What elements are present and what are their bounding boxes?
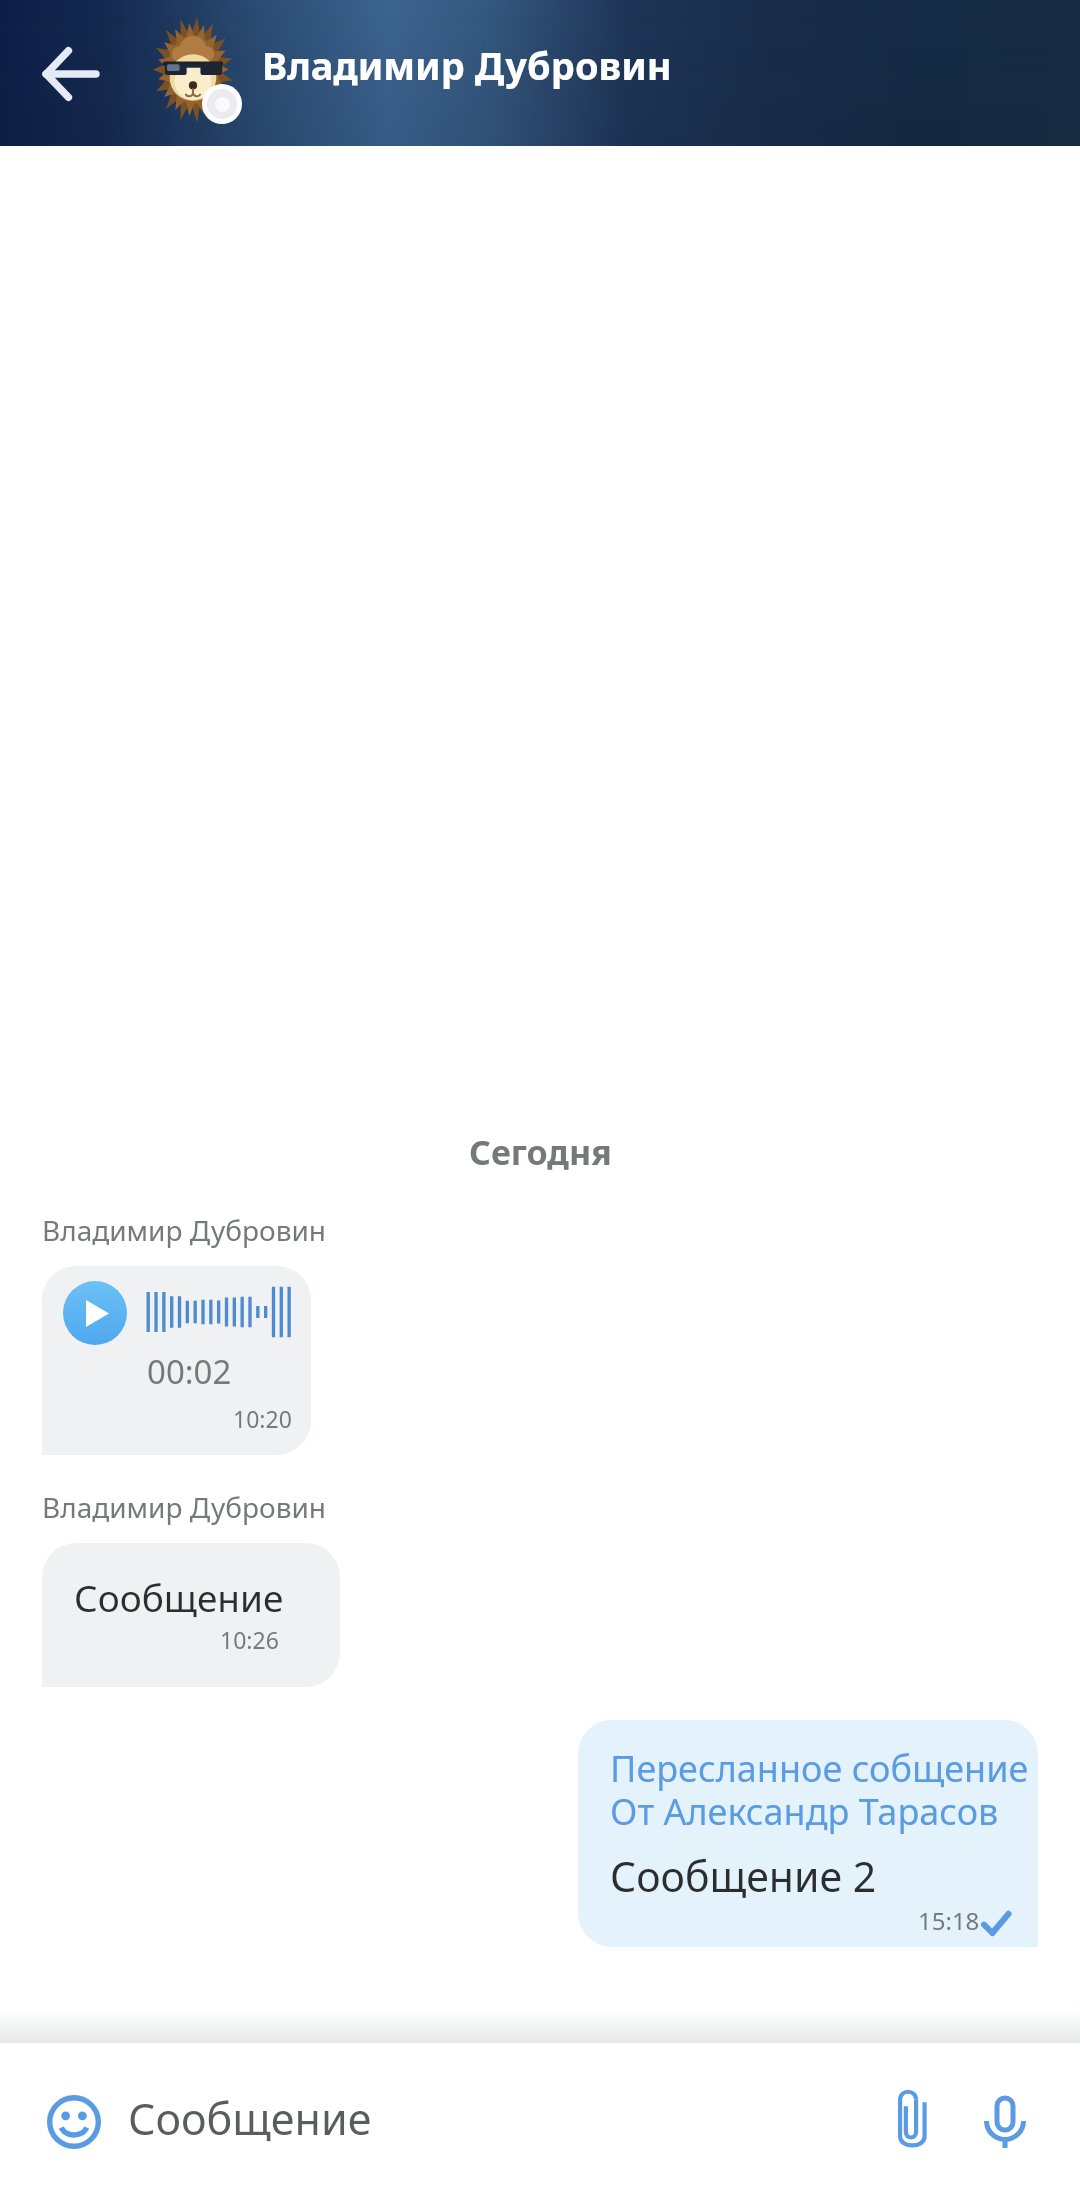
button[interactable]: Пересланное собщение: [578, 1720, 1038, 1947]
button[interactable]: Emoji: [38, 2086, 110, 2158]
staticText: Сообщение: [128, 2089, 372, 2148]
staticText: 15:18: [918, 1904, 980, 1937]
button[interactable]: Back: [36, 40, 104, 108]
staticText: Сегодня: [469, 1129, 612, 1175]
staticText: 10:20: [233, 1403, 292, 1434]
staticText: Пересланное собщение: [610, 1744, 1029, 1793]
staticText: Сообщение: [74, 1572, 284, 1622]
button[interactable]: Сообщение: [42, 1543, 340, 1687]
staticText: От Александр Тарасов: [610, 1787, 999, 1836]
button[interactable]: Владимир Дубровин: [142, 0, 652, 146]
button[interactable]: Attach file: [874, 2081, 950, 2157]
staticText: Сообщение 2: [610, 1848, 877, 1904]
staticText: Владимир Дубровин: [42, 1211, 327, 1249]
button[interactable]: 00:02: [42, 1266, 311, 1455]
staticText: Владимир Дубровин: [42, 1488, 327, 1526]
staticText: Владимир Дубровин: [262, 39, 672, 91]
staticText: 10:26: [220, 1624, 279, 1655]
button[interactable]: Record voice message: [967, 2085, 1043, 2161]
staticText: 00:02: [147, 1349, 232, 1394]
